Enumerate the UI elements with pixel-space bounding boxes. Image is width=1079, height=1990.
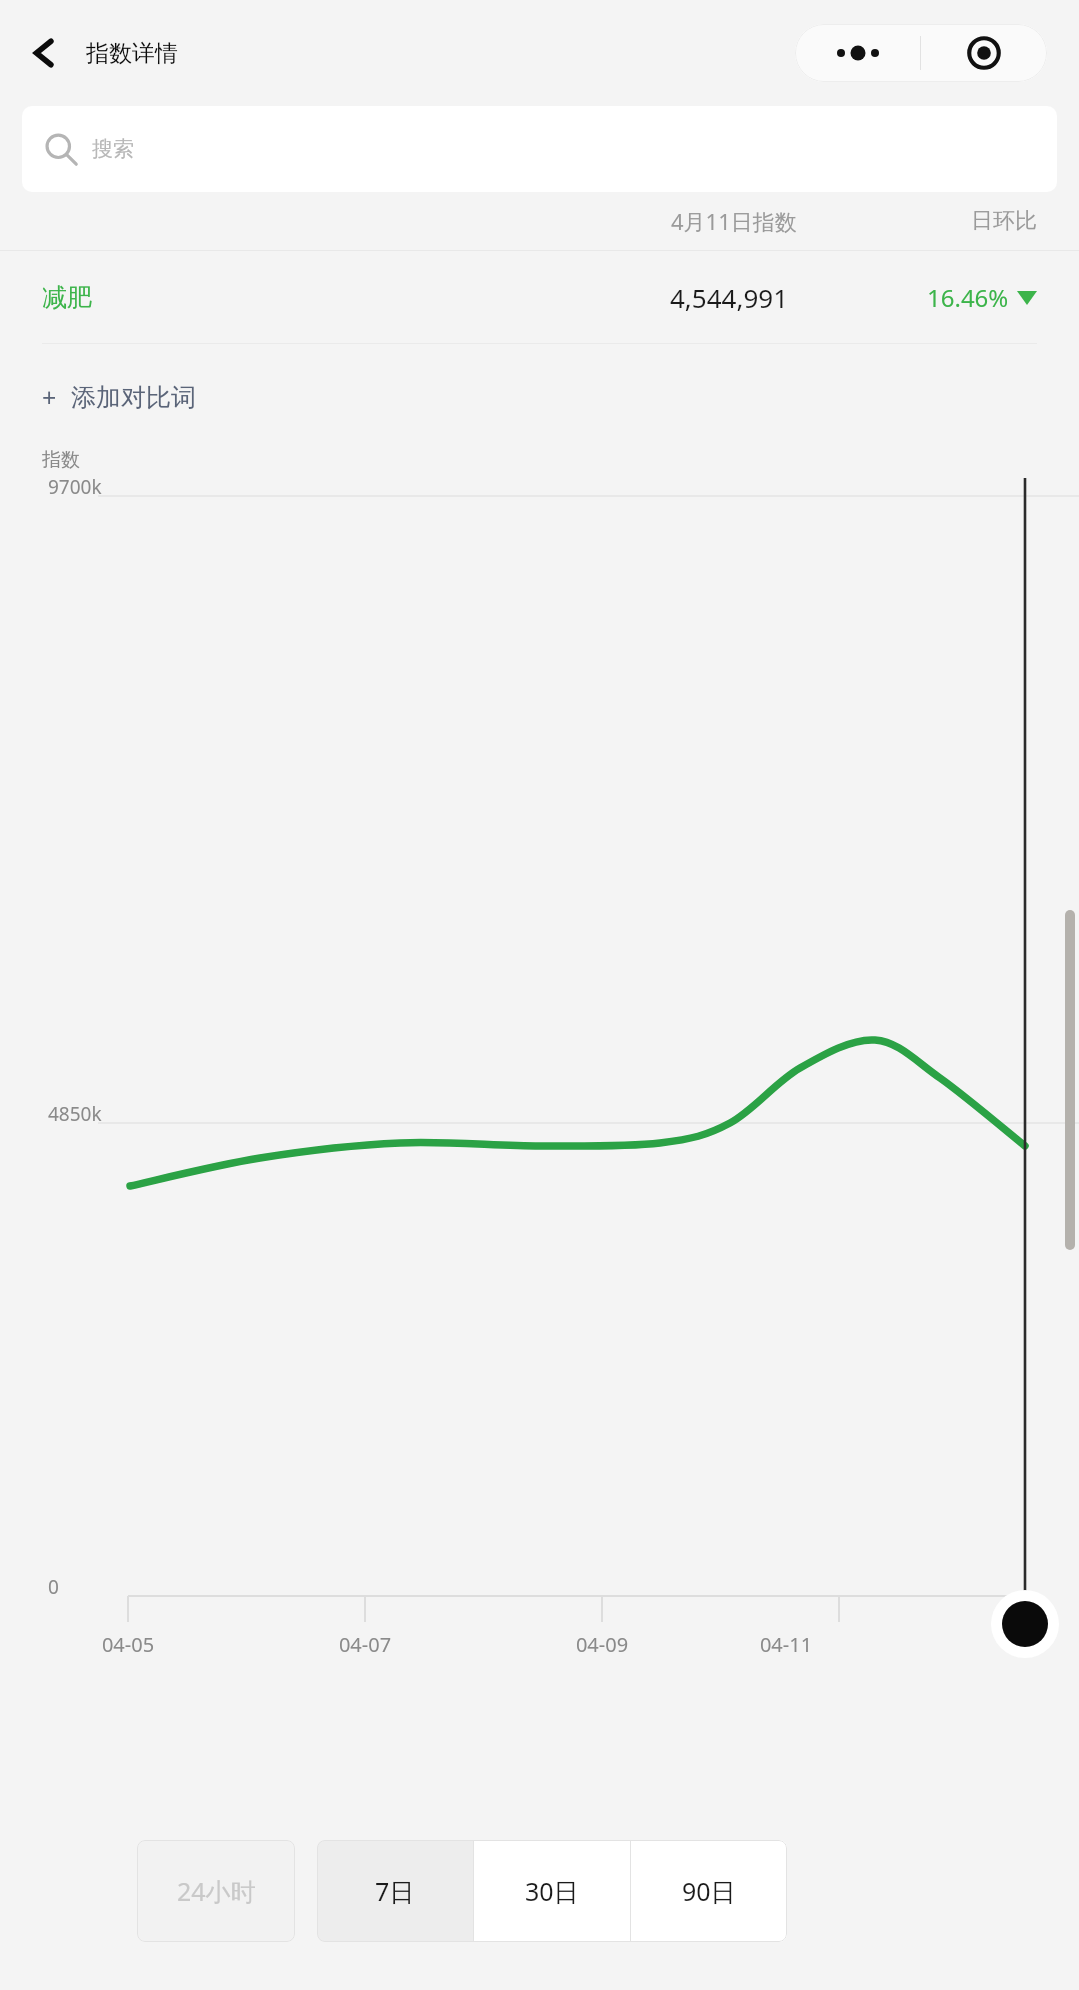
staticText: 指数详情 (86, 39, 178, 68)
staticText: 9700k (48, 474, 102, 500)
staticText: 04-07 (305, 1631, 425, 1658)
staticText: 4850k (48, 1101, 102, 1127)
staticText: 添加对比词 (71, 382, 196, 413)
staticText: 16.46% (927, 281, 1009, 314)
button[interactable]: More options (795, 24, 920, 82)
staticText: 7日 (375, 1874, 415, 1908)
button[interactable]: 24小时 (137, 1840, 295, 1942)
staticText: 30日 (525, 1874, 579, 1908)
staticText: 24小时 (177, 1874, 256, 1908)
button[interactable]: Back (14, 25, 70, 81)
staticText: 4月11日指数 (671, 206, 797, 236)
button[interactable]: Close (921, 24, 1047, 82)
staticText: 日环比 (971, 207, 1037, 235)
staticText: 04-05 (68, 1631, 188, 1658)
staticText: 搜索 (92, 136, 134, 162)
button[interactable]: + (42, 380, 196, 414)
staticText: 指数 (42, 448, 80, 472)
staticText: 90日 (682, 1874, 736, 1908)
button[interactable]: 7日 (317, 1840, 473, 1942)
staticText: 04-09 (542, 1631, 662, 1658)
button[interactable]: 搜索 (22, 106, 1057, 192)
button[interactable]: 30日 (474, 1840, 630, 1942)
staticText: 4,544,991 (670, 280, 789, 315)
staticText: 减肥 (42, 282, 92, 313)
button[interactable]: 90日 (631, 1840, 787, 1942)
staticText: + (42, 380, 57, 414)
button[interactable]: 减肥 (0, 251, 1079, 343)
staticText: 04-11 (726, 1631, 846, 1658)
staticText: 0 (48, 1574, 59, 1600)
